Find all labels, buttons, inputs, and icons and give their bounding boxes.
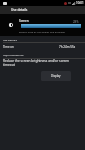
button[interactable]: Time on	[0, 43, 85, 50]
button[interactable]: Settings	[0, 6, 85, 14]
staticText: 7h 24m 55s	[59, 45, 76, 49]
button[interactable]: Screen	[0, 14, 85, 36]
staticText: Battery used by the display and backligh…	[19, 30, 66, 33]
staticText: 10:01	[76, 1, 84, 5]
staticText: Reduce the screen brightness and/or scre…	[3, 59, 75, 67]
staticText: ADJUST POWER USE	[3, 54, 24, 57]
staticText: Display	[51, 74, 61, 78]
staticText: USE DETAILS	[3, 38, 18, 41]
staticText: 28%	[73, 20, 79, 24]
staticText: Screen	[19, 19, 29, 23]
staticText: Time on	[3, 45, 14, 49]
staticText: Use details	[11, 8, 28, 12]
button[interactable]: Display	[41, 71, 71, 81]
